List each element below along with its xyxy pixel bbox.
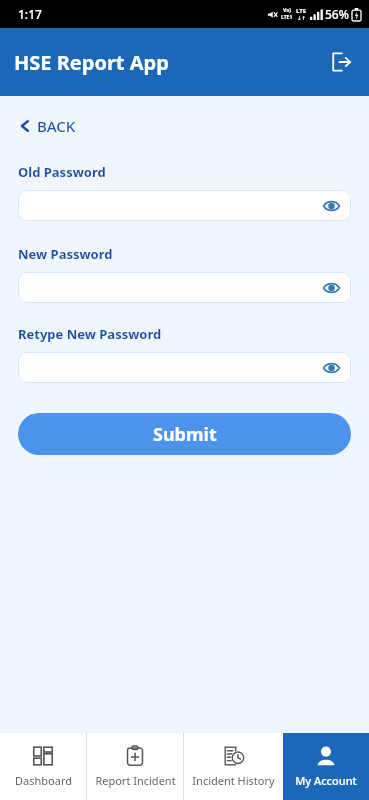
button[interactable]: My Account — [283, 733, 369, 800]
button[interactable]: Show password — [18, 190, 351, 221]
button[interactable]: Show password — [18, 352, 351, 383]
staticText: LTE — [296, 7, 307, 15]
button[interactable]: Show password — [319, 276, 343, 300]
staticText: Vo) — [283, 7, 291, 14]
staticText: 56% — [325, 6, 349, 22]
staticText: Report Incident — [95, 773, 176, 788]
staticText: Old Password — [18, 163, 106, 181]
button[interactable]: Report Incident — [87, 733, 183, 800]
button[interactable]: Show password — [18, 272, 351, 303]
button[interactable]: Submit — [18, 413, 351, 455]
button[interactable]: Logout — [319, 42, 359, 82]
staticText: Retype New Password — [18, 325, 162, 343]
staticText: Dashboard — [15, 773, 72, 788]
button[interactable]: BACK — [14, 112, 80, 140]
staticText: HSE Report App — [14, 49, 169, 76]
staticText: 1:17 — [18, 6, 42, 22]
button[interactable]: Dashboard — [0, 733, 86, 800]
button[interactable]: Show password — [319, 194, 343, 218]
staticText: Incident History — [192, 773, 275, 788]
staticText: New Password — [18, 245, 113, 263]
button[interactable]: Incident History — [184, 733, 283, 800]
button[interactable]: Show password — [319, 356, 343, 380]
staticText: Submit — [153, 422, 217, 447]
staticText: BACK — [37, 116, 76, 136]
staticText: ↓↑ — [297, 15, 306, 21]
staticText: My Account — [295, 773, 357, 788]
staticText: LTE1 — [281, 14, 293, 21]
